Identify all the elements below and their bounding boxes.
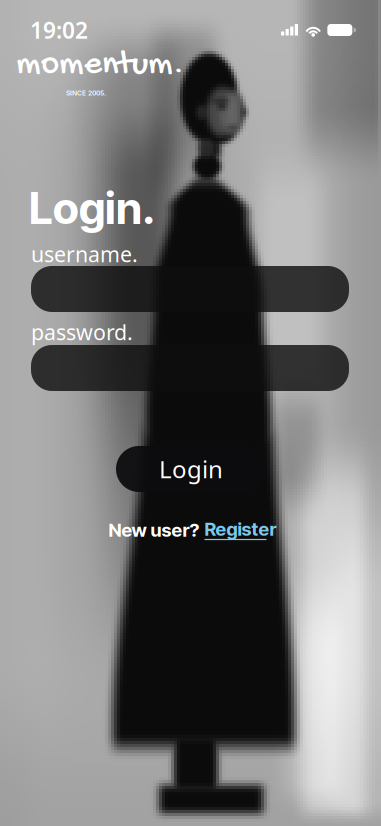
button[interactable]: Username (31, 266, 349, 312)
staticText: Register (204, 518, 276, 540)
staticText: 19:02 (30, 15, 88, 45)
staticText: SINCE 2005. (66, 89, 106, 97)
staticText: momentum. (16, 46, 184, 86)
staticText: Login (159, 453, 223, 485)
staticText: New user? (108, 519, 199, 541)
button[interactable]: Password (31, 345, 349, 391)
staticText: Login. (29, 181, 155, 235)
staticText: password. (31, 318, 133, 346)
staticText: username. (31, 240, 138, 268)
button[interactable]: Login (116, 446, 266, 492)
button[interactable]: Register (204, 519, 280, 541)
